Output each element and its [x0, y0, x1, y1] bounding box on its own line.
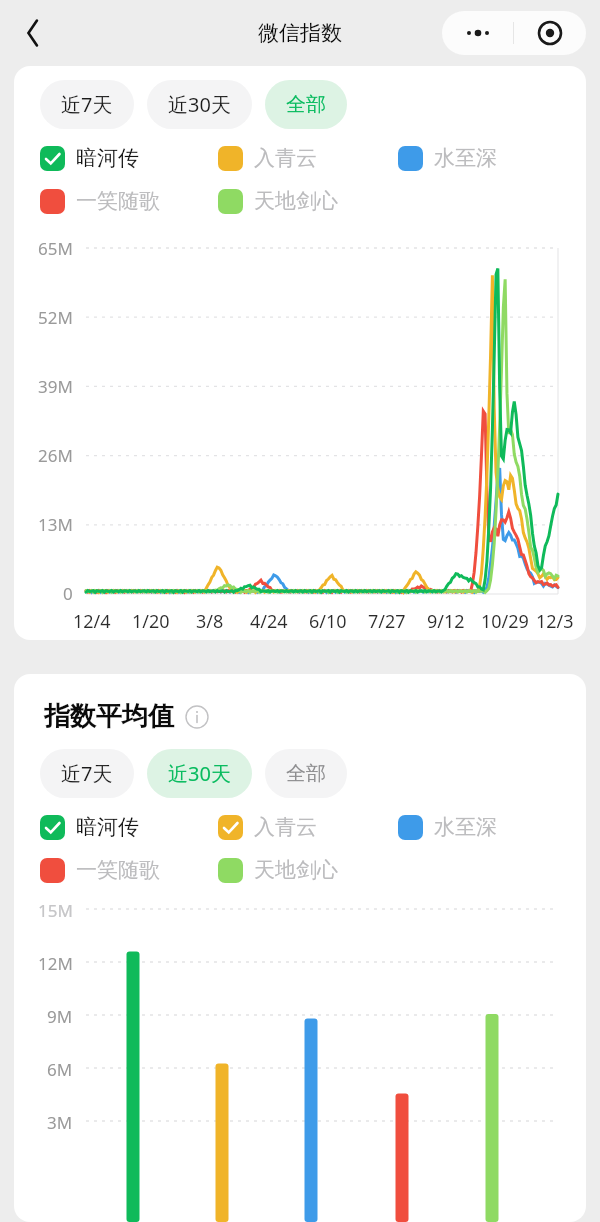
staticText: 6M	[47, 1058, 73, 1081]
button[interactable]: 暗河传	[40, 145, 218, 171]
button[interactable]: 近30天	[147, 749, 252, 798]
staticText: 65M	[38, 237, 73, 260]
button[interactable]: 天地剑心	[218, 188, 398, 214]
button[interactable]: 水至深	[398, 814, 558, 840]
staticText: 近30天	[168, 760, 231, 787]
staticText: 9M	[47, 1005, 73, 1028]
staticText: 入青云	[254, 145, 317, 171]
staticText: 3/8	[196, 609, 224, 634]
button[interactable]: 近30天	[147, 80, 252, 129]
staticText: 7/27	[368, 609, 406, 634]
button[interactable]: Target	[514, 11, 586, 55]
button[interactable]: 天地剑心	[218, 857, 398, 883]
staticText: 水至深	[434, 145, 497, 171]
staticText: 4/24	[250, 609, 288, 634]
staticText: 52M	[38, 306, 73, 329]
button[interactable]: 水至深	[398, 145, 558, 171]
staticText: 12/4	[73, 609, 111, 634]
button[interactable]: 一笑随歌	[40, 857, 218, 883]
button[interactable]: 全部	[265, 80, 347, 129]
button[interactable]: Information	[184, 704, 210, 730]
button[interactable]: More options	[442, 11, 513, 55]
staticText: 3M	[47, 1111, 73, 1134]
staticText: 入青云	[254, 814, 317, 840]
staticText: 一笑随歌	[76, 857, 160, 883]
staticText: 水至深	[434, 814, 497, 840]
staticText: 9/12	[427, 609, 465, 634]
button[interactable]: 入青云	[218, 814, 398, 840]
staticText: 12/3	[536, 609, 574, 634]
staticText: 12M	[38, 952, 73, 975]
staticText: 近7天	[61, 91, 113, 118]
staticText: 一笑随歌	[76, 188, 160, 214]
staticText: 6/10	[309, 609, 347, 634]
button[interactable]: 近7天	[40, 80, 134, 129]
staticText: 10/29	[481, 609, 529, 634]
staticText: 全部	[286, 761, 326, 786]
button[interactable]: 全部	[265, 749, 347, 798]
staticText: 0	[63, 582, 73, 605]
staticText: 暗河传	[76, 145, 139, 171]
staticText: 天地剑心	[254, 188, 338, 214]
staticText: 近7天	[61, 760, 113, 787]
staticText: 39M	[38, 375, 73, 398]
staticText: 15M	[38, 899, 73, 922]
button[interactable]: 近7天	[40, 749, 134, 798]
staticText: 天地剑心	[254, 857, 338, 883]
staticText: 近30天	[168, 91, 231, 118]
staticText: 26M	[38, 444, 73, 467]
button[interactable]: Back	[12, 10, 58, 56]
staticText: 全部	[286, 92, 326, 117]
button[interactable]: 一笑随歌	[40, 188, 218, 214]
staticText: 1/20	[132, 609, 170, 634]
staticText: 13M	[38, 513, 73, 536]
staticText: 微信指数	[258, 20, 342, 46]
button[interactable]: 入青云	[218, 145, 398, 171]
staticText: 暗河传	[76, 814, 139, 840]
staticText: 指数平均值	[44, 700, 174, 733]
button[interactable]: 暗河传	[40, 814, 218, 840]
